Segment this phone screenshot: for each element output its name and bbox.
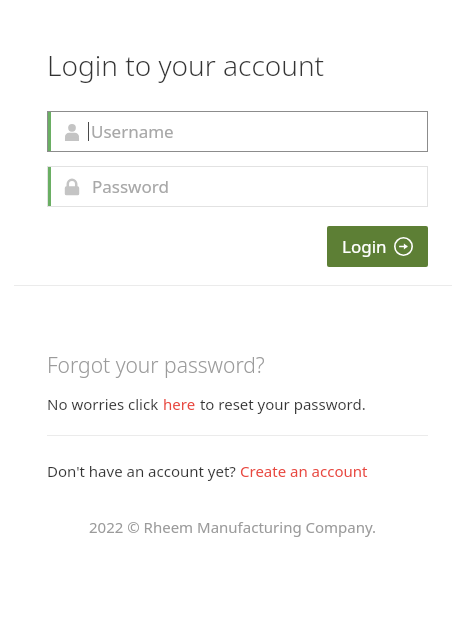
other: Login	[394, 237, 413, 256]
button[interactable]: Password	[47, 166, 428, 207]
button[interactable]: Login	[327, 226, 428, 267]
button[interactable]: Username	[47, 111, 428, 152]
staticText: Forgot your password?	[47, 351, 265, 380]
staticText: Username	[91, 120, 174, 143]
staticText: Login to your account	[47, 46, 325, 84]
staticText: Don't have an account yet?	[47, 461, 240, 481]
staticText: Login	[342, 235, 387, 258]
button[interactable]: Create an account	[240, 461, 368, 481]
button[interactable]: here	[163, 394, 196, 414]
staticText: 2022 © Rheem Manufacturing Company.	[89, 517, 377, 537]
staticText: No worries click	[47, 394, 163, 414]
staticText: to reset your password.	[196, 394, 366, 414]
staticText: Password	[92, 175, 169, 198]
